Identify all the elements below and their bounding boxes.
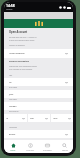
staticText: as it is shown on your passport.	[9, 68, 33, 70]
other: Home	[11, 143, 16, 148]
staticText: Last name	[9, 98, 17, 100]
staticText: 1990	[53, 117, 58, 120]
staticText: Accounts	[26, 149, 35, 152]
staticText: United Kingdom	[9, 52, 25, 55]
staticText: 10	[6, 117, 9, 120]
button[interactable]: Home	[4, 140, 22, 153]
staticText: Title	[9, 74, 13, 76]
button[interactable]: May	[28, 114, 50, 122]
staticText: John	[9, 93, 14, 96]
staticText: Please enter your information exactly	[9, 65, 37, 67]
button[interactable]: Search	[56, 140, 73, 153]
staticText: 14:58	[6, 3, 15, 8]
button[interactable]: United Kingdom	[4, 49, 73, 58]
other: Accounts	[28, 143, 33, 148]
button[interactable]: Morgan	[4, 102, 73, 110]
button[interactable]: Payments	[39, 140, 56, 153]
staticText: British	[9, 133, 16, 136]
button[interactable]: John	[4, 90, 73, 98]
staticText: Get help with this form — Contact us	[9, 36, 37, 38]
staticText: Open Account	[9, 30, 28, 34]
staticText: Payments	[43, 149, 52, 152]
staticText: Mr	[9, 81, 12, 84]
staticText: Mobile	[6, 8, 13, 11]
staticText: May	[30, 117, 34, 120]
button[interactable]: 1990	[51, 114, 73, 122]
staticText: Morgan	[9, 105, 17, 108]
staticText: Search	[62, 149, 68, 152]
staticText: Nationality	[9, 126, 18, 128]
staticText: or visit your nearest branch today.	[9, 39, 35, 41]
button[interactable]: British	[4, 130, 73, 138]
staticText: Country of residence	[9, 44, 25, 46]
staticText: Date of birth	[9, 110, 19, 112]
staticText: First name	[9, 86, 17, 88]
staticText: Home	[10, 149, 16, 152]
staticText: Personal information	[9, 60, 30, 63]
other: Payments	[45, 143, 50, 148]
button[interactable]: Mr	[4, 78, 73, 86]
button[interactable]: Accounts	[22, 140, 39, 153]
other: Search	[62, 143, 67, 148]
button[interactable]: 10	[4, 114, 27, 122]
